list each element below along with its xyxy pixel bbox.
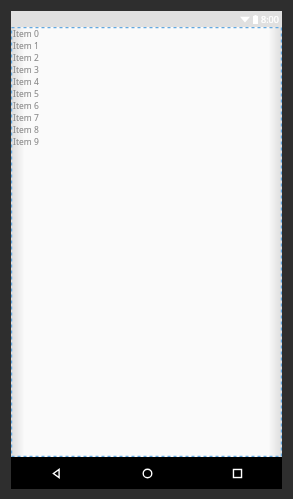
button[interactable]: Item 0 bbox=[13, 28, 282, 40]
button[interactable]: Item 8 bbox=[13, 124, 282, 136]
button[interactable]: Item 1 bbox=[13, 40, 282, 52]
staticText: Item 0 bbox=[13, 28, 39, 40]
staticText: Item 7 bbox=[13, 112, 39, 124]
button[interactable]: Item 3 bbox=[13, 64, 282, 76]
button[interactable]: Item 9 bbox=[13, 136, 282, 148]
staticText: Item 2 bbox=[13, 52, 39, 64]
staticText: Item 6 bbox=[13, 100, 39, 112]
button[interactable]: Item 7 bbox=[13, 112, 282, 124]
staticText: Item 4 bbox=[13, 76, 39, 88]
button[interactable]: Item 6 bbox=[13, 100, 282, 112]
button[interactable]: Back bbox=[11, 457, 102, 489]
staticText: Item 3 bbox=[13, 64, 39, 76]
button[interactable]: Home bbox=[102, 457, 192, 489]
button[interactable]: Item 2 bbox=[13, 52, 282, 64]
staticText: Item 9 bbox=[13, 136, 39, 148]
button[interactable]: Item 4 bbox=[13, 76, 282, 88]
staticText: Item 8 bbox=[13, 124, 39, 136]
staticText: 8:00 bbox=[261, 13, 279, 25]
button[interactable]: Recents bbox=[192, 457, 282, 489]
staticText: Item 5 bbox=[13, 88, 39, 100]
button[interactable]: Item 5 bbox=[13, 88, 282, 100]
staticText: Item 1 bbox=[13, 40, 39, 52]
